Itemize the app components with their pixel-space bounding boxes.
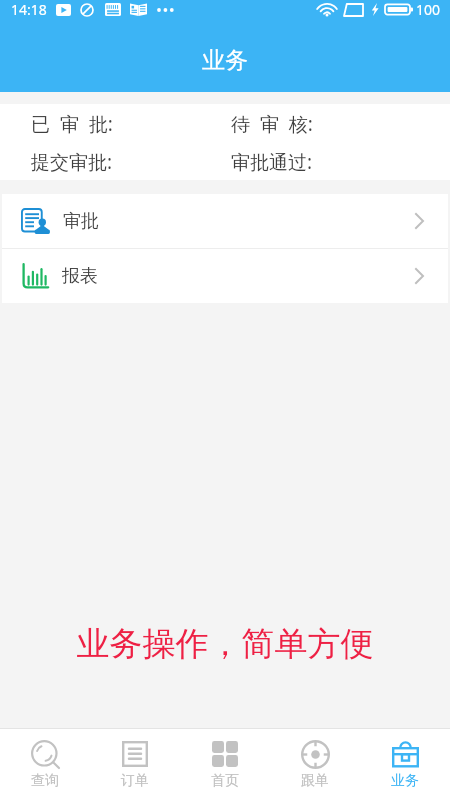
staticText: 跟单 bbox=[301, 772, 329, 790]
staticText: 业务操作，简单方便 bbox=[0, 623, 450, 665]
staticText: 审批通过: bbox=[231, 149, 313, 175]
staticText: 已 审 批: bbox=[31, 111, 113, 137]
staticText: 业务 bbox=[391, 772, 419, 790]
button[interactable]: 首页 bbox=[180, 729, 270, 800]
button[interactable]: 业务 bbox=[360, 729, 450, 800]
button[interactable]: 查询 bbox=[0, 729, 90, 800]
button[interactable]: 审批 bbox=[2, 194, 448, 248]
staticText: 业务 bbox=[202, 46, 248, 75]
staticText: 查询 bbox=[31, 772, 59, 790]
staticText: 提交审批: bbox=[31, 149, 113, 175]
button[interactable]: 报表 bbox=[2, 249, 448, 303]
staticText: 首页 bbox=[211, 772, 239, 790]
button[interactable]: 订单 bbox=[90, 729, 180, 800]
staticText: 待 审 核: bbox=[231, 111, 313, 137]
button[interactable]: 跟单 bbox=[270, 729, 360, 800]
staticText: 100 bbox=[416, 0, 441, 19]
staticText: 14:18 bbox=[11, 0, 47, 19]
staticText: 订单 bbox=[121, 772, 149, 790]
staticText: 审批 bbox=[63, 210, 99, 233]
staticText: 报表 bbox=[62, 265, 98, 288]
